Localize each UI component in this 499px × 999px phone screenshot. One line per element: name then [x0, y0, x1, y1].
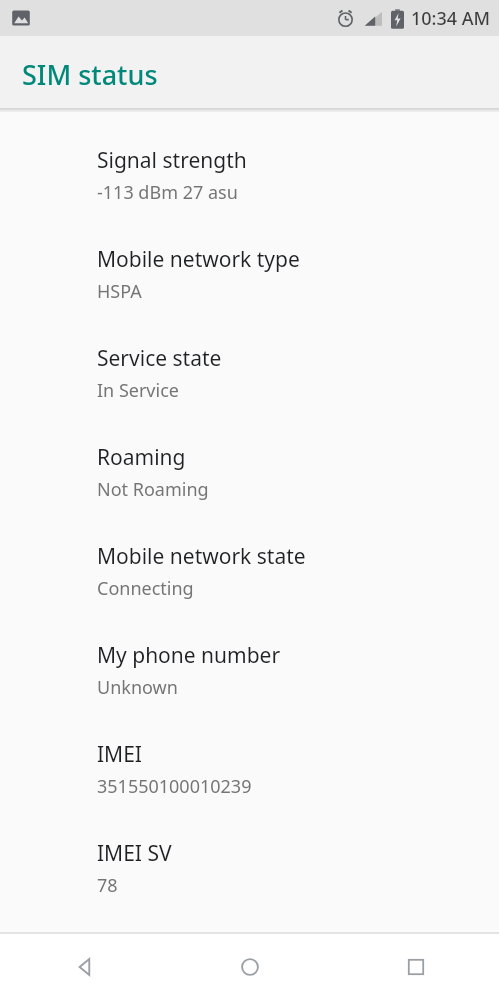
- button[interactable]: Roaming: [0, 443, 499, 502]
- staticText: 10:34 AM: [411, 6, 491, 31]
- staticText: 351550100010239: [97, 774, 252, 799]
- staticText: Unknown: [97, 675, 178, 700]
- button[interactable]: Service state: [0, 344, 499, 403]
- staticText: In Service: [97, 378, 179, 403]
- staticText: Service state: [97, 344, 222, 373]
- staticText: Mobile network type: [97, 245, 300, 274]
- staticText: IMEI: [97, 740, 142, 769]
- button[interactable]: Signal strength: [0, 146, 499, 205]
- button[interactable]: IMEI SV: [0, 839, 499, 898]
- button[interactable]: Mobile network state: [0, 542, 499, 601]
- button[interactable]: Home: [167, 934, 333, 999]
- staticText: Roaming: [97, 443, 186, 472]
- staticText: IMEI SV: [97, 839, 172, 868]
- staticText: 78: [97, 873, 118, 898]
- staticText: Mobile network state: [97, 542, 306, 571]
- staticText: Signal strength: [97, 146, 247, 175]
- staticText: My phone number: [97, 641, 281, 670]
- staticText: Not Roaming: [97, 477, 209, 502]
- button[interactable]: IMEI: [0, 740, 499, 799]
- staticText: SIM status: [22, 56, 158, 93]
- staticText: HSPA: [97, 279, 142, 304]
- button[interactable]: Back: [0, 934, 167, 999]
- button[interactable]: My phone number: [0, 641, 499, 700]
- staticText: -113 dBm 27 asu: [97, 180, 238, 205]
- button[interactable]: Mobile network type: [0, 245, 499, 304]
- button[interactable]: Recent apps: [333, 934, 499, 999]
- staticText: Connecting: [97, 576, 194, 601]
